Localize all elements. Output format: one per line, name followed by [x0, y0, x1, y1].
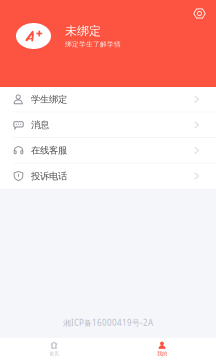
button[interactable]: 投诉电话 — [0, 164, 216, 188]
button[interactable]: 学生绑定 — [0, 87, 216, 112]
staticText: 未绑定 — [65, 23, 101, 38]
button[interactable]: Settings — [186, 0, 216, 27]
staticText: 湘ICP备16000419号-2A — [63, 317, 153, 328]
staticText: 学生绑定 — [31, 94, 67, 105]
staticText: 在线客服 — [31, 145, 67, 156]
button[interactable]: 首页 — [0, 338, 108, 360]
staticText: 我的 — [157, 350, 167, 357]
button[interactable]: 我的 — [108, 338, 216, 360]
staticText: 首页 — [49, 350, 59, 357]
staticText: 绑定学生了解学情 — [65, 40, 121, 48]
button[interactable]: 消息 — [0, 112, 216, 137]
button[interactable]: 在线客服 — [0, 138, 216, 163]
staticText: 消息 — [31, 119, 49, 131]
staticText: 投诉电话 — [31, 170, 67, 182]
